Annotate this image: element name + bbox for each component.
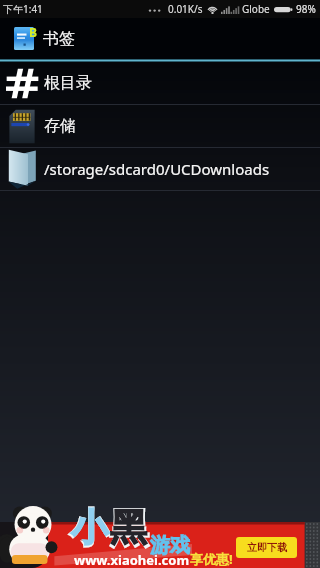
staticText: 小	[71, 504, 108, 551]
button[interactable]: B	[0, 18, 320, 59]
staticText: 书签	[43, 29, 75, 49]
staticText: 小黑	[69, 503, 149, 553]
staticText: 游戏	[150, 533, 190, 558]
button[interactable]: 根目录	[0, 62, 320, 104]
staticText: 0.01K/s	[168, 2, 203, 16]
staticText: 存储	[44, 116, 76, 136]
staticText: 黑	[110, 504, 147, 551]
staticText: 立即下载	[247, 541, 287, 554]
button[interactable]: 小黑	[0, 503, 320, 568]
button[interactable]: /storage/sdcard0/UCDownloads	[0, 148, 320, 190]
staticText: 下午1:41	[3, 2, 43, 16]
staticText: /storage/sdcard0/UCDownloads	[44, 159, 270, 179]
staticText: www.xiaohei.com	[74, 551, 190, 568]
staticText: Globe	[242, 2, 270, 16]
staticText: 根目录	[44, 73, 92, 93]
staticText: 享优惠!	[190, 550, 233, 568]
staticText: 98%	[296, 2, 316, 16]
button[interactable]: 存储	[0, 105, 320, 147]
button[interactable]: 立即下载	[236, 537, 297, 558]
staticText: B	[29, 24, 37, 40]
